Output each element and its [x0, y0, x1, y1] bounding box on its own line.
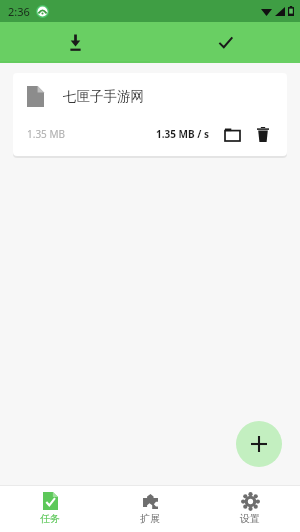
staticText: 任务 [40, 512, 60, 525]
staticText: 七匣子手游网 [63, 88, 144, 105]
button[interactable]: Delete [252, 123, 274, 145]
staticText: 1.35 MB [27, 127, 66, 141]
button[interactable]: Open folder [221, 123, 243, 145]
button[interactable]: Downloading [0, 22, 150, 63]
button[interactable]: 任务 [0, 485, 100, 532]
button[interactable]: Completed [150, 22, 300, 63]
button[interactable]: Add download [236, 421, 282, 467]
staticText: 设置 [240, 512, 260, 525]
button[interactable]: 设置 [200, 485, 300, 532]
staticText: 扩展 [140, 512, 160, 525]
button[interactable]: 七匣子手游网 [13, 73, 287, 156]
staticText: 1.35 MB / s [156, 127, 210, 141]
button[interactable]: 扩展 [100, 485, 200, 532]
staticText: 2:36 [8, 4, 30, 19]
